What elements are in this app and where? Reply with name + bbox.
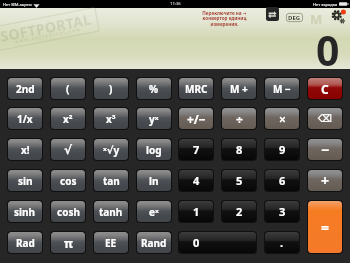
button[interactable]: cosh: [51, 201, 85, 222]
staticText: +/−: [187, 111, 206, 127]
button[interactable]: ÷: [222, 108, 256, 129]
button[interactable]: tan: [94, 170, 128, 191]
staticText: 7: [193, 142, 200, 157]
button[interactable]: ˣ√y: [94, 139, 128, 160]
staticText: ): [109, 82, 113, 96]
staticText: eˣ: [149, 205, 159, 219]
staticText: 9: [279, 142, 286, 157]
staticText: tanh: [99, 205, 123, 219]
button[interactable]: 6: [265, 170, 299, 191]
staticText: MRC: [185, 82, 208, 96]
button[interactable]: 1: [179, 201, 213, 222]
button[interactable]: (: [51, 78, 85, 99]
button[interactable]: ): [94, 78, 128, 99]
staticText: yˣ: [149, 112, 159, 126]
staticText: 6: [279, 173, 286, 188]
staticText: ˣ√y: [103, 143, 120, 157]
staticText: 2: [236, 204, 243, 219]
staticText: EE: [105, 236, 117, 250]
staticText: 3: [279, 204, 286, 219]
button[interactable]: yˣ: [137, 108, 171, 129]
staticText: 0: [193, 235, 200, 250]
staticText: M −: [273, 82, 291, 96]
staticText: tan: [103, 174, 120, 188]
staticText: π: [64, 235, 73, 251]
staticText: x³: [106, 112, 116, 126]
button[interactable]: π: [51, 232, 85, 253]
staticText: 8: [236, 142, 243, 157]
button[interactable]: x!: [8, 139, 42, 160]
staticText: Нет SIM-карты: [3, 2, 32, 7]
button[interactable]: cos: [51, 170, 85, 191]
button[interactable]: EE: [94, 232, 128, 253]
staticText: Нет зарядки: [313, 2, 338, 7]
button[interactable]: +/−: [179, 108, 213, 129]
button[interactable]: √: [51, 139, 85, 160]
staticText: ÷: [236, 111, 243, 127]
button[interactable]: eˣ: [137, 201, 171, 222]
button[interactable]: 9: [265, 139, 299, 160]
button[interactable]: DEG: [286, 13, 303, 22]
staticText: Переключите на → конвертор единиц измере…: [202, 10, 247, 28]
staticText: 2nd: [16, 82, 35, 96]
button[interactable]: ln: [137, 170, 171, 191]
staticText: 1: [193, 204, 200, 219]
button[interactable]: 3: [265, 201, 299, 222]
button[interactable]: .: [265, 232, 299, 253]
button[interactable]: 2: [222, 201, 256, 222]
button[interactable]: ⌫: [308, 108, 342, 129]
staticText: =: [321, 218, 330, 237]
staticText: x²: [63, 112, 73, 126]
button[interactable]: Rad: [8, 232, 42, 253]
button[interactable]: ×: [265, 108, 299, 129]
button[interactable]: 0: [179, 232, 256, 253]
button[interactable]: M −: [265, 78, 299, 99]
staticText: 4: [193, 173, 200, 188]
button[interactable]: 5: [222, 170, 256, 191]
button[interactable]: %: [137, 78, 171, 99]
button[interactable]: Settings: [329, 7, 346, 24]
staticText: 0: [316, 22, 340, 78]
staticText: sin: [18, 174, 33, 188]
button[interactable]: M +: [222, 78, 256, 99]
staticText: −: [321, 140, 330, 159]
staticText: www.softportal.com: [14, 26, 82, 44]
staticText: SOFTPORTAL: [0, 9, 94, 46]
button[interactable]: log: [137, 139, 171, 160]
button[interactable]: Rand: [137, 232, 171, 253]
staticText: M +: [230, 82, 248, 96]
button[interactable]: x³: [94, 108, 128, 129]
staticText: ln: [149, 174, 159, 188]
button[interactable]: 2nd: [8, 78, 42, 99]
staticText: √: [64, 143, 73, 157]
staticText: log: [146, 143, 162, 157]
staticText: Rad: [16, 236, 35, 250]
button[interactable]: Switch to unit converter: [266, 7, 279, 21]
button[interactable]: x²: [51, 108, 85, 129]
button[interactable]: +: [308, 170, 342, 191]
button[interactable]: sinh: [8, 201, 42, 222]
staticText: DEG: [288, 14, 301, 22]
staticText: cos: [60, 174, 77, 188]
staticText: .: [280, 235, 284, 250]
button[interactable]: sin: [8, 170, 42, 191]
button[interactable]: =: [308, 201, 342, 253]
staticText: ⌫: [318, 113, 333, 125]
button[interactable]: 4: [179, 170, 213, 191]
button[interactable]: −: [308, 139, 342, 160]
staticText: 1/x: [17, 112, 33, 126]
staticText: 5: [236, 173, 243, 188]
staticText: Rand: [141, 236, 167, 250]
staticText: M: [310, 10, 323, 28]
button[interactable]: 7: [179, 139, 213, 160]
button[interactable]: C: [308, 78, 342, 99]
staticText: sinh: [14, 205, 36, 219]
button[interactable]: 1/x: [8, 108, 42, 129]
button[interactable]: MRC: [179, 78, 213, 99]
staticText: x!: [21, 143, 30, 157]
staticText: ×: [279, 111, 286, 127]
staticText: 11:36: [170, 1, 181, 7]
button[interactable]: 8: [222, 139, 256, 160]
button[interactable]: tanh: [94, 201, 128, 222]
staticText: (: [66, 82, 70, 96]
